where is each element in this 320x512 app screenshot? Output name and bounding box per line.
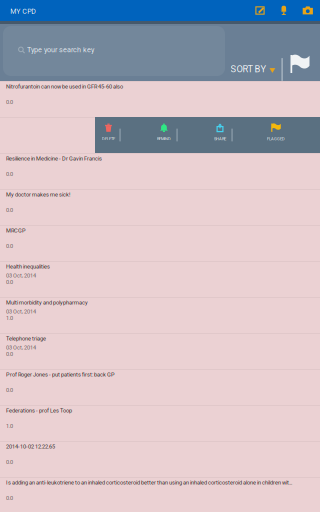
staticText: FLAGGED bbox=[267, 136, 285, 141]
staticText: 0.0 bbox=[6, 207, 13, 213]
staticText: SORT BY bbox=[230, 63, 266, 74]
button[interactable]: Flag bbox=[287, 51, 313, 77]
staticText: 0.0 bbox=[6, 243, 13, 249]
staticText: Resilience in Medicine - Dr Gavin Franci… bbox=[6, 155, 102, 162]
button[interactable]: SHARE bbox=[207, 117, 233, 153]
button[interactable]: Federations - prof Les Toop bbox=[0, 405, 320, 441]
staticText: 0.0 bbox=[6, 279, 13, 285]
staticText: My doctor makes me sick! bbox=[6, 191, 70, 198]
staticText: 1.0 bbox=[6, 423, 13, 429]
staticText: MY CPD bbox=[10, 7, 36, 15]
staticText: MRCGP bbox=[6, 227, 26, 234]
staticText: 1.0 bbox=[6, 315, 13, 321]
staticText: 0.0 bbox=[6, 351, 13, 357]
staticText: 0.0 bbox=[6, 495, 13, 501]
staticText: 0.0 bbox=[6, 99, 13, 105]
button[interactable]: SORT BY bbox=[230, 58, 275, 80]
button[interactable]: DELETE bbox=[95, 117, 121, 153]
button[interactable]: Resilience in Medicine - Dr Gavin Franci… bbox=[0, 153, 320, 189]
staticText: Federations - prof Les Toop bbox=[6, 407, 72, 414]
staticText: Health inequalities bbox=[6, 263, 50, 270]
button[interactable]: Compose bbox=[248, 0, 272, 21]
button[interactable] bbox=[0, 117, 320, 153]
staticText: DELETE bbox=[102, 136, 115, 141]
button[interactable]: Type your search key bbox=[3, 26, 225, 76]
staticText: 2014-10-02 12.22.65 bbox=[6, 443, 55, 450]
button[interactable]: MRCGP bbox=[0, 225, 320, 261]
staticText: 03 Oct, 2014 bbox=[6, 344, 36, 351]
staticText: 03 Oct, 2014 bbox=[6, 272, 36, 279]
staticText: Is adding an anti-leukotriene to an inha… bbox=[6, 479, 292, 486]
button[interactable]: Voice search bbox=[272, 0, 296, 21]
staticText: Prof Roger Jones - put patients first: b… bbox=[6, 371, 115, 378]
staticText: Multi morbidity and polypharmacy bbox=[6, 299, 88, 306]
button[interactable]: Is adding an anti-leukotriene to an inha… bbox=[0, 477, 320, 512]
button[interactable]: FLAGGED bbox=[263, 117, 289, 153]
staticText: REMIND bbox=[157, 136, 171, 141]
staticText: Telephone triage bbox=[6, 335, 46, 342]
staticText: Nitrofurantoin can now be used in GFR 45… bbox=[6, 83, 123, 90]
button[interactable]: Telephone triage bbox=[0, 333, 320, 369]
staticText: 03 Oct, 2014 bbox=[6, 308, 36, 315]
staticText: 0.0 bbox=[6, 387, 13, 393]
staticText: SHARE bbox=[214, 136, 226, 141]
button[interactable]: Nitrofurantoin can now be used in GFR 45… bbox=[0, 81, 320, 117]
button[interactable]: REMIND bbox=[151, 117, 177, 153]
button[interactable]: My doctor makes me sick! bbox=[0, 189, 320, 225]
button[interactable]: Multi morbidity and polypharmacy bbox=[0, 297, 320, 333]
button[interactable]: Prof Roger Jones - put patients first: b… bbox=[0, 369, 320, 405]
button[interactable]: 2014-10-02 12.22.65 bbox=[0, 441, 320, 477]
staticText: 0.0 bbox=[6, 459, 13, 465]
staticText: 0.0 bbox=[6, 171, 13, 177]
button[interactable]: Health inequalities bbox=[0, 261, 320, 297]
button[interactable]: Camera bbox=[296, 0, 320, 21]
staticText: Type your search key bbox=[27, 46, 94, 54]
